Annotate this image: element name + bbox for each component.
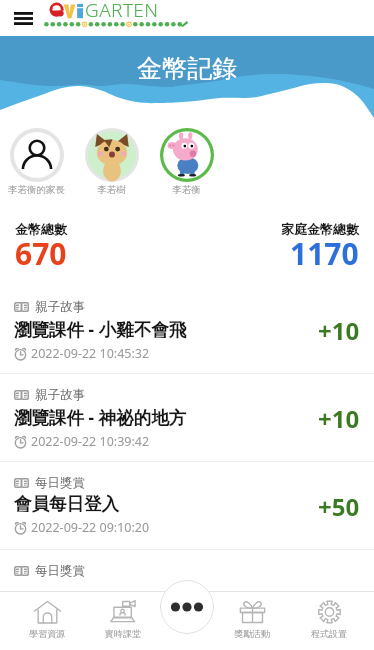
staticText: 親子故事 xyxy=(35,299,85,315)
button[interactable]: 親子故事 xyxy=(0,286,374,373)
staticText: 李若衡的家長 xyxy=(8,184,65,196)
button[interactable]: 程式設置 xyxy=(293,591,365,639)
button[interactable]: Menu xyxy=(6,1,40,35)
staticText: 程式設置 xyxy=(311,628,347,639)
staticText: 實時課堂 xyxy=(105,628,141,639)
staticText: 瀏覽課件 - 神祕的地方 xyxy=(14,405,187,429)
staticText: 金幣總數 xyxy=(15,221,67,237)
staticText: 670 xyxy=(15,233,67,269)
staticText: 獎勵活動 xyxy=(234,628,270,639)
staticText: 會員每日登入 xyxy=(14,493,119,515)
button[interactable]: 實時課堂 xyxy=(87,591,159,639)
staticText: 李若樹 xyxy=(97,184,126,196)
button[interactable]: 李若衡 xyxy=(149,128,224,196)
staticText: 家庭金幣總數 xyxy=(281,221,359,237)
button[interactable]: 獎勵活動 xyxy=(216,591,288,639)
button[interactable]: 學習資源 xyxy=(11,591,83,639)
staticText: 2022-09-22 09:10:20 xyxy=(31,519,150,536)
staticText: +50 xyxy=(318,490,360,523)
staticText: 每日獎賞 xyxy=(35,475,85,491)
button[interactable]: More xyxy=(160,580,214,634)
staticText: 1170 xyxy=(290,233,359,269)
staticText: 學習資源 xyxy=(29,628,65,639)
button[interactable]: 李若樹 xyxy=(74,128,149,196)
staticText: 金幣記錄 xyxy=(137,53,237,84)
staticText: GARTEN xyxy=(85,0,159,23)
button[interactable]: 每日獎賞 xyxy=(0,462,374,549)
staticText: 李若衡 xyxy=(172,184,201,196)
staticText: 2022-09-22 10:39:42 xyxy=(31,433,150,450)
staticText: 親子故事 xyxy=(35,387,85,403)
staticText: 2022-09-22 10:45:32 xyxy=(31,345,150,362)
staticText: +10 xyxy=(318,402,360,435)
staticText: 每日獎賞 xyxy=(35,563,85,579)
button[interactable]: 李若衡的家長 xyxy=(0,128,74,196)
staticText: 瀏覽課件 - 小雞不會飛 xyxy=(14,317,187,341)
button[interactable]: 親子故事 xyxy=(0,374,374,461)
staticText: +10 xyxy=(318,314,360,347)
